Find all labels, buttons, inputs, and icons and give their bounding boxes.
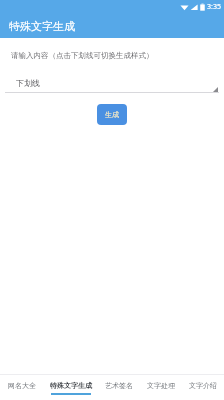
button[interactable]: 网名大全 <box>0 375 43 400</box>
staticText: 生成 <box>105 110 119 119</box>
staticText: 特殊文字生成 <box>50 381 92 390</box>
staticText: 特殊文字生成 <box>9 19 75 33</box>
button[interactable]: 下划线 <box>0 74 224 93</box>
button[interactable]: 特殊文字生成 <box>43 375 98 400</box>
staticText: 文字处理 <box>147 381 175 390</box>
button[interactable]: 文字介绍 <box>182 375 224 400</box>
staticText: 请输入内容（点击下划线可切换生成样式） <box>11 51 154 60</box>
staticText: 艺术签名 <box>105 381 133 390</box>
button[interactable]: 文字处理 <box>140 375 182 400</box>
button[interactable]: 艺术签名 <box>98 375 140 400</box>
staticText: 下划线 <box>16 78 40 88</box>
staticText: 文字介绍 <box>189 381 217 390</box>
staticText: 3:35 <box>207 2 221 12</box>
button[interactable]: 请输入内容（点击下划线可切换生成样式） <box>0 44 224 66</box>
staticText: 网名大全 <box>8 381 36 390</box>
button[interactable]: 生成 <box>97 104 127 125</box>
